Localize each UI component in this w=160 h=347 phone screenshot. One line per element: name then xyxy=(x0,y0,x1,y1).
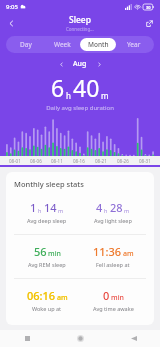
staticText: 11:36 xyxy=(93,244,122,259)
staticText: Aug xyxy=(73,59,87,69)
button[interactable]: 4 xyxy=(80,200,146,224)
staticText: 08-16 xyxy=(73,158,85,164)
staticText: min xyxy=(111,293,124,303)
staticText: 1 xyxy=(30,200,37,215)
staticText: 08-21 xyxy=(95,158,107,164)
staticText: 28 xyxy=(110,200,123,215)
staticText: m xyxy=(124,207,130,214)
button[interactable]: Recent apps xyxy=(0,330,54,347)
staticText: Day xyxy=(20,40,32,49)
staticText: Year xyxy=(127,40,141,49)
staticText: Avg deep sleep xyxy=(27,217,67,224)
staticText: 14 xyxy=(44,200,57,215)
staticText: 08-31 xyxy=(139,158,151,164)
staticText: Daily avg sleep duration xyxy=(0,104,160,112)
button[interactable]: Week xyxy=(44,38,80,51)
staticText: h xyxy=(104,207,108,214)
staticText: 08-11 xyxy=(51,158,63,164)
staticText: am xyxy=(57,293,68,303)
staticText: h xyxy=(66,90,71,101)
button[interactable]: Share xyxy=(141,15,157,31)
staticText: 56 xyxy=(34,244,47,259)
staticText: 08-26 xyxy=(117,158,129,164)
staticText: h xyxy=(38,207,42,214)
button[interactable]: Back xyxy=(107,330,160,347)
staticText: 30 xyxy=(146,5,151,10)
staticText: Woke up at xyxy=(32,305,62,312)
staticText: 4 xyxy=(96,200,103,215)
staticText: 08-01 xyxy=(9,158,21,164)
staticText: m xyxy=(101,90,109,101)
staticText: Fell asleep at xyxy=(96,261,130,268)
button[interactable]: Back xyxy=(3,15,19,31)
staticText: Week xyxy=(54,40,71,49)
staticText: Avg light sleep xyxy=(94,217,132,224)
staticText: 6 xyxy=(51,72,65,103)
button[interactable]: 0 xyxy=(80,288,146,312)
button[interactable]: Home xyxy=(54,330,107,347)
button[interactable]: 56 xyxy=(14,244,80,268)
button[interactable]: Next month xyxy=(93,58,105,70)
staticText: 06:16 xyxy=(27,288,56,303)
button[interactable]: Previous month xyxy=(55,58,67,70)
staticText: Connecting... xyxy=(66,26,94,32)
button[interactable]: Day xyxy=(8,38,44,51)
button[interactable]: Year xyxy=(116,38,152,51)
staticText: m xyxy=(58,207,64,214)
button[interactable]: 1 xyxy=(14,200,80,224)
staticText: min xyxy=(48,249,61,259)
staticText: 40 xyxy=(73,72,100,103)
staticText: Avg time awake xyxy=(93,305,134,312)
staticText: 9:05 xyxy=(6,3,18,11)
button[interactable]: Month xyxy=(80,38,116,51)
staticText: am xyxy=(123,249,134,259)
staticText: 0 xyxy=(103,288,110,303)
staticText: Monthly sleep stats xyxy=(14,179,84,189)
button[interactable]: 06:16 xyxy=(14,288,80,312)
staticText: Avg REM sleep xyxy=(28,261,66,268)
button[interactable]: 11:36 xyxy=(80,244,146,268)
staticText: Month xyxy=(88,40,109,49)
staticText: Sleep xyxy=(69,14,91,26)
staticText: 08-06 xyxy=(30,158,42,164)
